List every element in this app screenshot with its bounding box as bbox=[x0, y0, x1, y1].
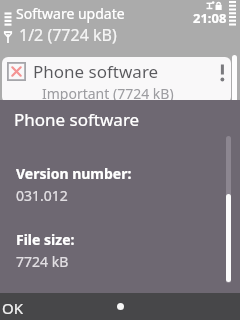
staticText: Software update bbox=[16, 4, 125, 23]
button[interactable]: Menu bbox=[0, 0, 16, 28]
button[interactable]: Phone software update item bbox=[2, 57, 231, 103]
staticText: Version number: bbox=[16, 164, 132, 183]
button[interactable]: Options bbox=[117, 303, 124, 310]
staticText: 1/2 (7724 kB) bbox=[19, 24, 117, 46]
staticText: Phone software bbox=[33, 60, 159, 83]
staticText: 031.012 bbox=[16, 186, 68, 205]
staticText: 21:08 bbox=[193, 9, 227, 27]
staticText: Important (7724 kB) bbox=[42, 84, 174, 103]
staticText: OK bbox=[2, 298, 24, 318]
staticText: Phone software bbox=[14, 108, 140, 131]
staticText: 7724 kB bbox=[16, 252, 69, 271]
staticText: File size: bbox=[16, 230, 75, 249]
button[interactable]: OK bbox=[0, 293, 240, 320]
